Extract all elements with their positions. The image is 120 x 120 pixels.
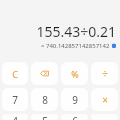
staticText: % — [71, 68, 79, 80]
button[interactable]: × — [91, 88, 118, 111]
staticText: 4 — [12, 114, 18, 120]
button[interactable]: Copy result — [111, 43, 117, 49]
button[interactable]: 5 — [31, 114, 58, 120]
button[interactable]: ÷ — [91, 62, 118, 85]
button[interactable]: % — [61, 62, 88, 85]
staticText: × — [102, 93, 108, 107]
button[interactable]: 7 — [2, 88, 28, 111]
button[interactable]: 4 — [2, 114, 28, 120]
button[interactable]: Backspace — [31, 62, 58, 85]
button[interactable]: 6 — [61, 114, 88, 120]
staticText: C — [12, 68, 18, 80]
staticText: 155.43÷0.21 — [0, 22, 116, 41]
staticText: ÷ — [102, 67, 108, 81]
button[interactable]: 9 — [61, 88, 88, 111]
button[interactable]: 8 — [31, 88, 58, 111]
staticText: 7 — [12, 93, 18, 107]
staticText: 9 — [72, 93, 78, 107]
button[interactable]: C — [2, 62, 28, 85]
staticText: 5 — [42, 114, 48, 120]
staticText: 8 — [42, 93, 48, 107]
staticText: = 740.142857142857142 — [41, 42, 110, 50]
staticText: 6 — [72, 114, 78, 120]
